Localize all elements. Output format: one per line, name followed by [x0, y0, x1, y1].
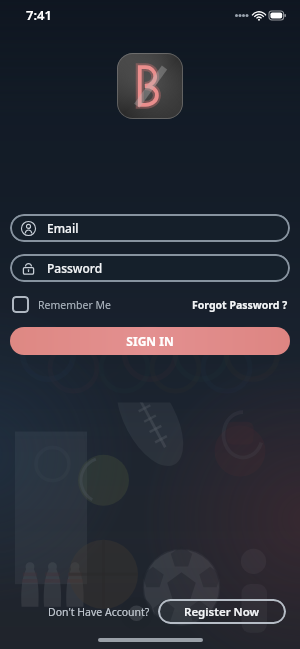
button[interactable]: Remember Me — [12, 296, 111, 313]
staticText: Don't Have Account? — [48, 605, 150, 619]
staticText: Email — [47, 220, 79, 236]
staticText: Forgot Password ? — [192, 298, 288, 312]
button[interactable]: Register Now — [158, 599, 286, 624]
button[interactable]: SIGN IN — [10, 327, 290, 355]
staticText: Password — [47, 260, 103, 276]
staticText: 7:41 — [26, 6, 52, 24]
staticText: Register Now — [184, 604, 260, 620]
button[interactable]: Password — [10, 254, 290, 282]
button[interactable]: Forgot Password ? — [192, 298, 288, 312]
staticText: Remember Me — [38, 298, 111, 312]
staticText: SIGN IN — [126, 333, 174, 349]
button[interactable]: Email — [10, 214, 290, 242]
